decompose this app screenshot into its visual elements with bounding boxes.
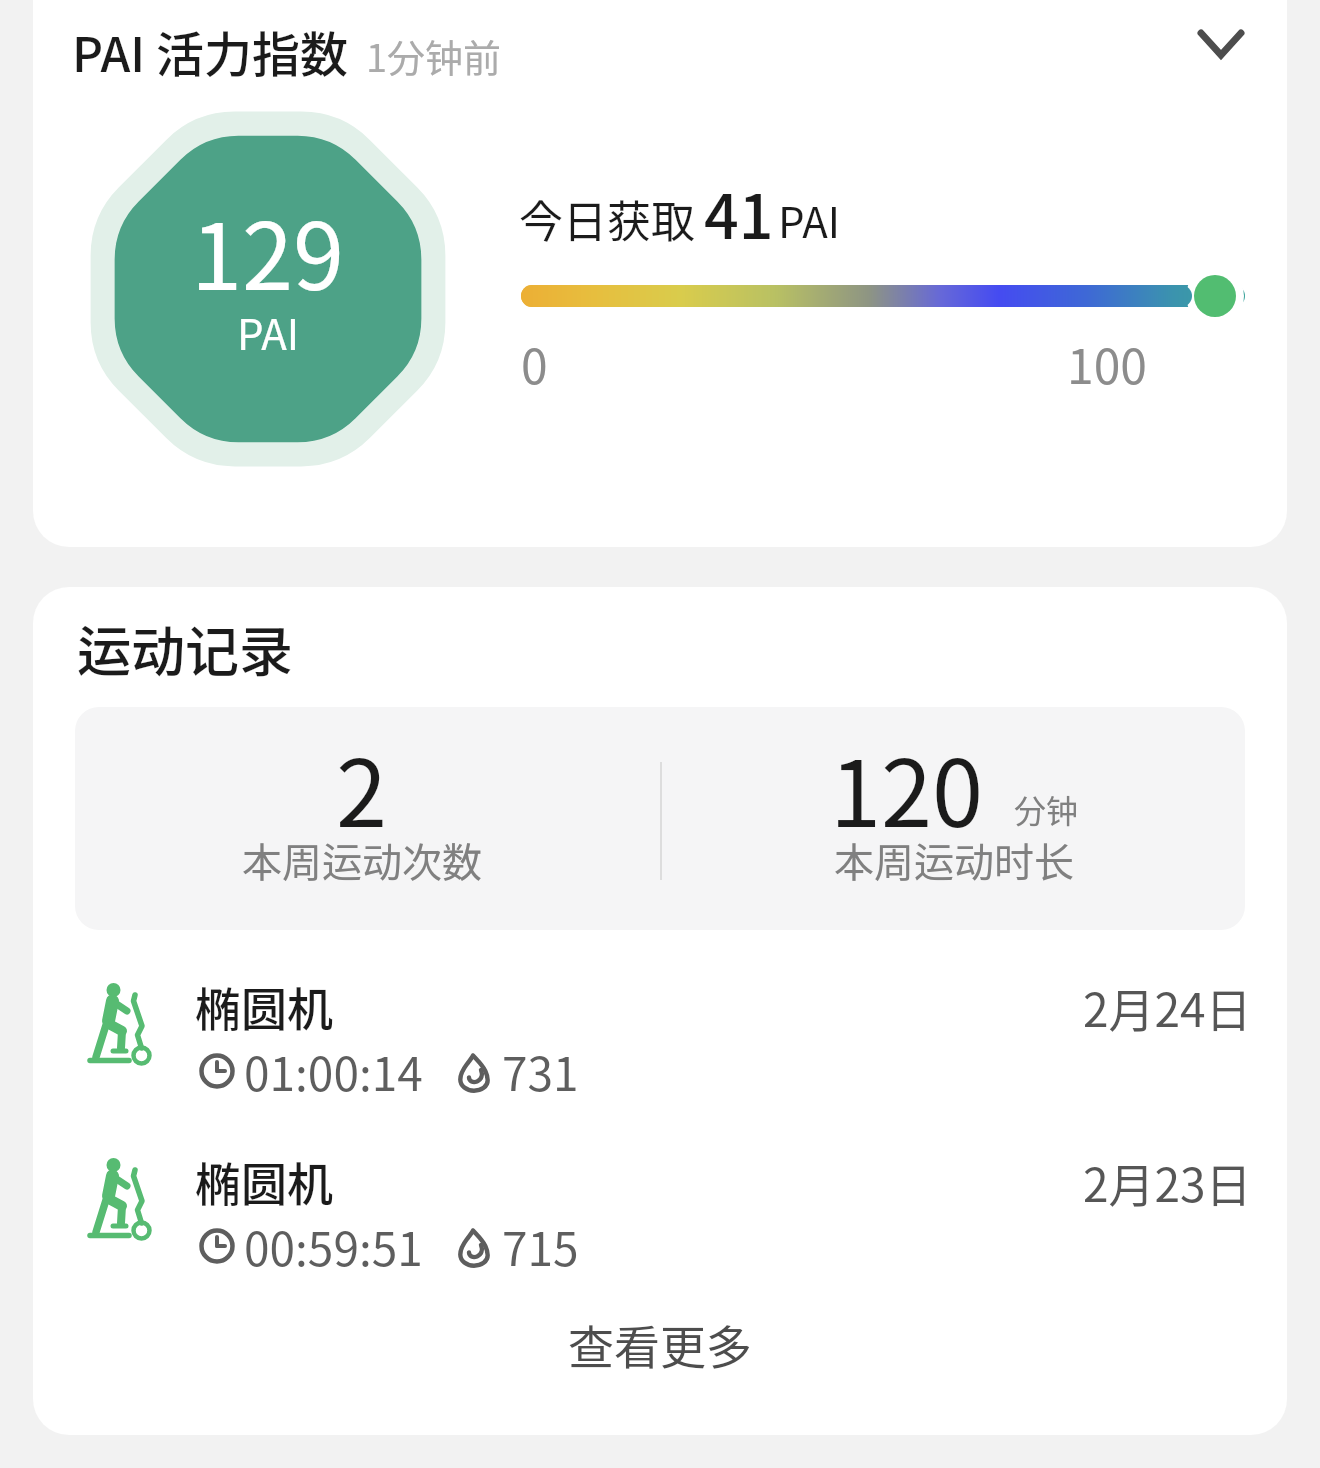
staticText: 本周运动次数 [242,831,482,889]
staticText: 100 [1067,328,1147,398]
staticText: 41 [704,168,774,256]
button[interactable]: 查看更多 [510,1304,810,1384]
button[interactable]: 椭圆机 [33,1155,1287,1315]
staticText: 01:00:14 [244,1038,423,1105]
staticText: PAI [237,301,300,362]
button[interactable]: 椭圆机 [33,980,1287,1140]
staticText: 分钟 [1014,786,1079,832]
staticText: 查看更多 [568,1311,752,1378]
staticText: 运动记录 [77,609,293,687]
staticText: 1分钟前 [366,28,502,83]
staticText: PAI 活力指数 [72,16,348,86]
staticText: 120 [830,720,984,853]
staticText: 今日获取 [519,187,695,251]
staticText: 椭圆机 [195,973,333,1040]
staticText: 2月24日 [1083,974,1252,1041]
button[interactable] [1178,11,1268,81]
staticText: 129 [191,183,345,316]
staticText: PAI [778,189,841,250]
button[interactable]: 2 [75,707,1245,930]
staticText: 0 [521,328,548,398]
staticText: 00:59:51 [244,1213,423,1280]
staticText: 椭圆机 [195,1148,333,1215]
staticText: 本周运动时长 [834,831,1074,889]
staticText: 715 [502,1213,579,1280]
staticText: 731 [502,1038,579,1105]
staticText: 2 [336,720,388,853]
staticText: 2月23日 [1083,1149,1252,1216]
